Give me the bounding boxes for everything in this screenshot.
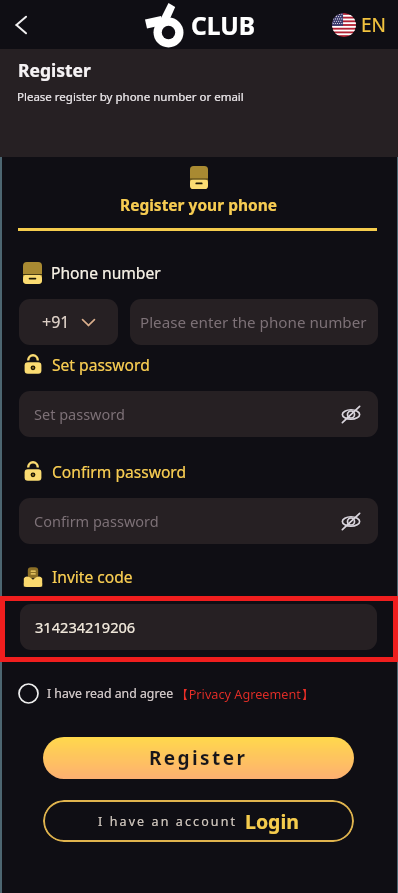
staticText: 314234219206 [35,617,136,637]
staticText: Confirm password [52,461,187,482]
staticText: Please enter the phone number [140,312,367,333]
button[interactable]: Back [2,6,40,44]
button[interactable]: Set password [19,391,378,437]
staticText: Please register by phone number or email [17,89,244,105]
staticText: Register your phone [120,194,278,215]
staticText: I have read and agree [47,685,174,702]
button[interactable]: I have read and agree [16,681,40,705]
button[interactable]: EN [332,12,387,38]
staticText: Login [245,808,299,835]
button[interactable]: Show password [338,401,364,427]
button[interactable]: Show password [338,508,364,534]
staticText: Confirm password [34,511,159,531]
staticText: Set password [34,404,125,424]
staticText: CLUB [191,9,255,42]
staticText: EN [361,12,387,38]
staticText: +91 [42,311,70,333]
staticText: Set password [52,354,150,375]
button[interactable]: +91 [19,299,118,345]
button[interactable]: Please enter the phone number [130,299,378,345]
staticText: Register [18,58,91,82]
button[interactable]: Register [43,737,354,779]
button[interactable]: 314234219206 [20,604,377,650]
staticText: I have an account [98,813,238,830]
staticText: Phone number [51,262,161,283]
staticText: Register [149,745,248,771]
button[interactable]: I have an account [43,800,354,842]
button[interactable]: Register your phone [0,166,398,215]
staticText: Invite code [52,566,133,587]
button[interactable]: 【Privacy Agreement】 [176,685,314,702]
button[interactable]: Confirm password [19,498,378,544]
